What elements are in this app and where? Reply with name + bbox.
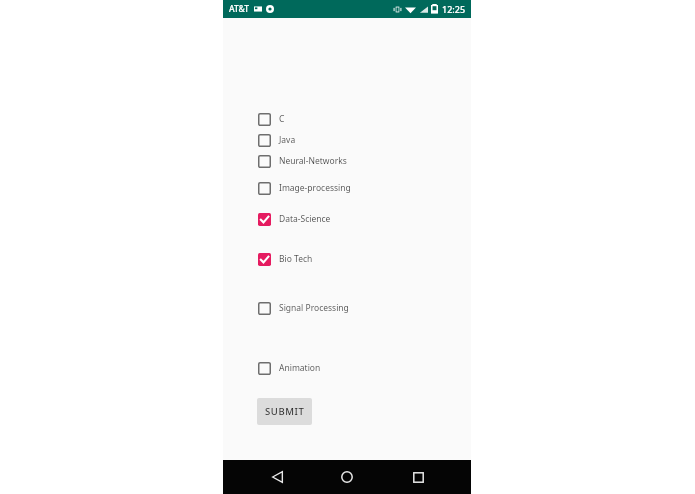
button[interactable]: Neural-Networks xyxy=(258,153,347,169)
button[interactable]: Back xyxy=(260,460,294,494)
button[interactable]: Image-processing xyxy=(258,180,351,196)
button[interactable]: C xyxy=(258,111,285,127)
staticText: Bio Tech xyxy=(279,253,313,265)
button[interactable]: Animation xyxy=(258,360,321,376)
button[interactable]: Java xyxy=(258,132,296,148)
staticText: SUBMIT xyxy=(265,405,305,418)
staticText: Signal Processing xyxy=(279,302,349,314)
button[interactable]: SUBMIT xyxy=(257,398,312,425)
staticText: Java xyxy=(279,134,296,146)
staticText: Data-Science xyxy=(279,213,331,225)
staticText: AT&T xyxy=(229,3,250,15)
staticText: C xyxy=(279,113,285,125)
staticText: 12:25 xyxy=(442,3,466,15)
staticText: Animation xyxy=(279,362,321,374)
button[interactable]: Signal Processing xyxy=(258,300,349,316)
button[interactable]: Bio Tech xyxy=(258,251,313,267)
staticText: Image-processing xyxy=(279,182,351,194)
button[interactable]: Data-Science xyxy=(258,211,331,227)
button[interactable]: Recent apps xyxy=(401,460,435,494)
staticText: Neural-Networks xyxy=(279,155,347,167)
button[interactable]: Home xyxy=(330,460,364,494)
